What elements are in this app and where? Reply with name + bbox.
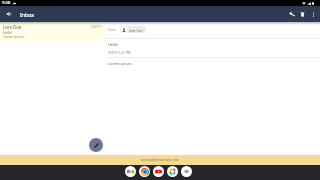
button[interactable]: Jane Doe bbox=[0, 22, 105, 42]
button[interactable]: YouTube bbox=[153, 166, 164, 177]
button[interactable]: More options bbox=[308, 6, 318, 22]
button[interactable]: Compose bbox=[89, 138, 103, 152]
button[interactable]: All apps bbox=[181, 166, 192, 177]
staticText: 3/3/13 1:21 PM bbox=[108, 51, 131, 55]
staticText: Lorem ipsum.. bbox=[108, 61, 134, 66]
button[interactable]: Jane Doe bbox=[120, 26, 146, 33]
button[interactable]: Photos bbox=[167, 166, 178, 177]
staticText: Hello! bbox=[108, 42, 119, 47]
staticText: 3/3/13 bbox=[91, 25, 101, 29]
staticText: example@example.com bbox=[141, 157, 179, 162]
button[interactable]: Delete bbox=[297, 6, 308, 22]
button[interactable]: Back bbox=[0, 6, 13, 22]
staticText: Lorem ipsum.. bbox=[3, 34, 26, 39]
staticText: 9:38 bbox=[2, 0, 11, 6]
button[interactable]: Reply bbox=[286, 6, 297, 22]
button[interactable]: Gmail bbox=[125, 166, 136, 177]
staticText: From bbox=[108, 28, 116, 32]
button[interactable]: Chrome bbox=[139, 166, 150, 177]
staticText: Jane Doe bbox=[129, 28, 143, 32]
staticText: Inbox bbox=[20, 11, 35, 18]
staticText: Hello! bbox=[3, 30, 13, 35]
staticText: Jane Doe bbox=[3, 24, 22, 30]
